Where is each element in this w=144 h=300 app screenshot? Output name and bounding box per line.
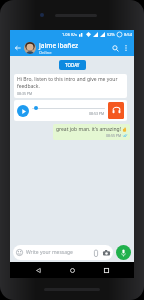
staticText: TODAY [65, 62, 80, 68]
staticText: Write your message [26, 249, 92, 256]
staticText: jaime ibañez [39, 41, 79, 50]
button[interactable]: Write your message [13, 245, 113, 260]
staticText: 08:35 PM [17, 91, 33, 96]
button[interactable]: Audio artwork [108, 102, 124, 119]
button[interactable]: Hi Bro, listen to this intro and give me… [14, 74, 127, 98]
button[interactable]: Contact photo [24, 42, 36, 54]
button[interactable]: Back [13, 43, 23, 53]
staticText: great job man. it's amazing! [56, 126, 121, 133]
button[interactable]: Back [32, 264, 44, 276]
staticText: 08:55 PM [106, 133, 122, 138]
staticText: Hi Bro, listen to this intro and give me… [17, 76, 124, 90]
staticText: 1.06 K/s [62, 32, 77, 37]
button[interactable]: Camera [102, 249, 110, 257]
button[interactable]: Home [66, 264, 78, 276]
button[interactable]: Recent apps [100, 264, 112, 276]
button[interactable]: More options [121, 43, 131, 53]
button[interactable]: Attach [92, 249, 100, 257]
button[interactable]: Search [109, 42, 121, 54]
staticText: 8:54 [124, 32, 132, 37]
button[interactable]: Play voice message [14, 100, 127, 121]
staticText: Online [39, 50, 52, 55]
button[interactable]: Play voice message [17, 105, 29, 117]
button[interactable]: great job man. it's amazing! [53, 124, 130, 140]
staticText: 52% [107, 32, 115, 37]
button[interactable]: Record voice message [116, 245, 131, 260]
staticText: 08:53 PM [89, 111, 105, 116]
button[interactable]: jaime ibañez [39, 41, 109, 55]
